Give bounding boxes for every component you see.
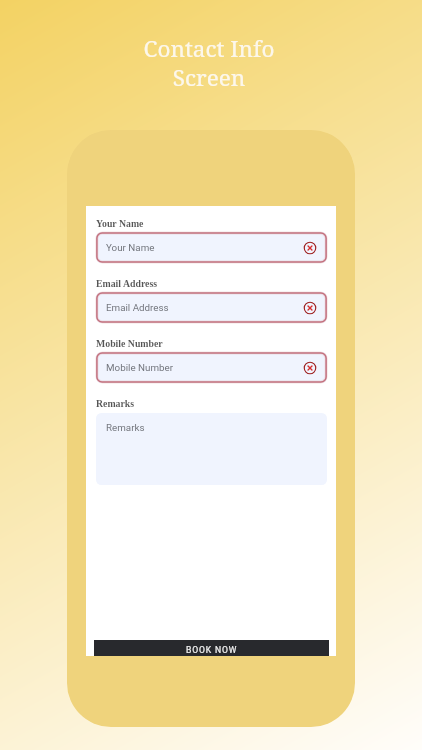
- staticText: Remarks: [106, 422, 145, 433]
- staticText: Contact Info Screen: [0, 33, 420, 92]
- staticText: Mobile Number: [96, 338, 163, 349]
- button[interactable]: Clear Mobile Number: [301, 359, 319, 377]
- button[interactable]: Clear Email Address: [301, 299, 319, 317]
- staticText: Your Name: [96, 218, 144, 229]
- staticText: Mobile Number: [106, 362, 174, 373]
- button[interactable]: Your Name: [96, 232, 327, 263]
- staticText: Email Address: [106, 302, 169, 313]
- button[interactable]: Clear Your Name: [301, 239, 319, 257]
- staticText: BOOK NOW: [186, 645, 238, 655]
- staticText: Email Address: [96, 278, 158, 289]
- staticText: Remarks: [96, 398, 135, 409]
- button[interactable]: BOOK NOW: [94, 640, 329, 656]
- button[interactable]: Mobile Number: [96, 352, 327, 383]
- button[interactable]: Remarks: [96, 413, 327, 485]
- staticText: Your Name: [106, 242, 155, 253]
- button[interactable]: Email Address: [96, 292, 327, 323]
